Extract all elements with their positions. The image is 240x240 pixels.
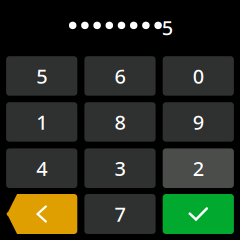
staticText: 1 [36,109,47,135]
staticText: 7 [114,201,125,227]
button[interactable]: 0 [163,56,234,96]
staticText: 9 [193,109,204,135]
button[interactable]: 6 [84,56,156,96]
staticText: 6 [114,63,125,89]
button[interactable]: 4 [6,148,77,188]
button[interactable]: 5 [6,56,77,96]
button[interactable]: 1 [6,102,77,142]
staticText: 2 [193,155,204,181]
button[interactable]: Confirm [163,194,234,234]
staticText: 8 [114,109,125,135]
button[interactable]: 9 [163,102,234,142]
staticText: 0 [193,63,204,89]
button[interactable]: 2 [163,148,234,188]
staticText: 4 [36,155,47,181]
button[interactable]: Delete [6,194,77,234]
button[interactable]: 8 [84,102,156,142]
staticText: 3 [114,155,125,181]
staticText: 5 [162,14,173,41]
staticText: 5 [36,63,47,89]
button[interactable]: 7 [84,194,156,234]
button[interactable]: 3 [84,148,156,188]
